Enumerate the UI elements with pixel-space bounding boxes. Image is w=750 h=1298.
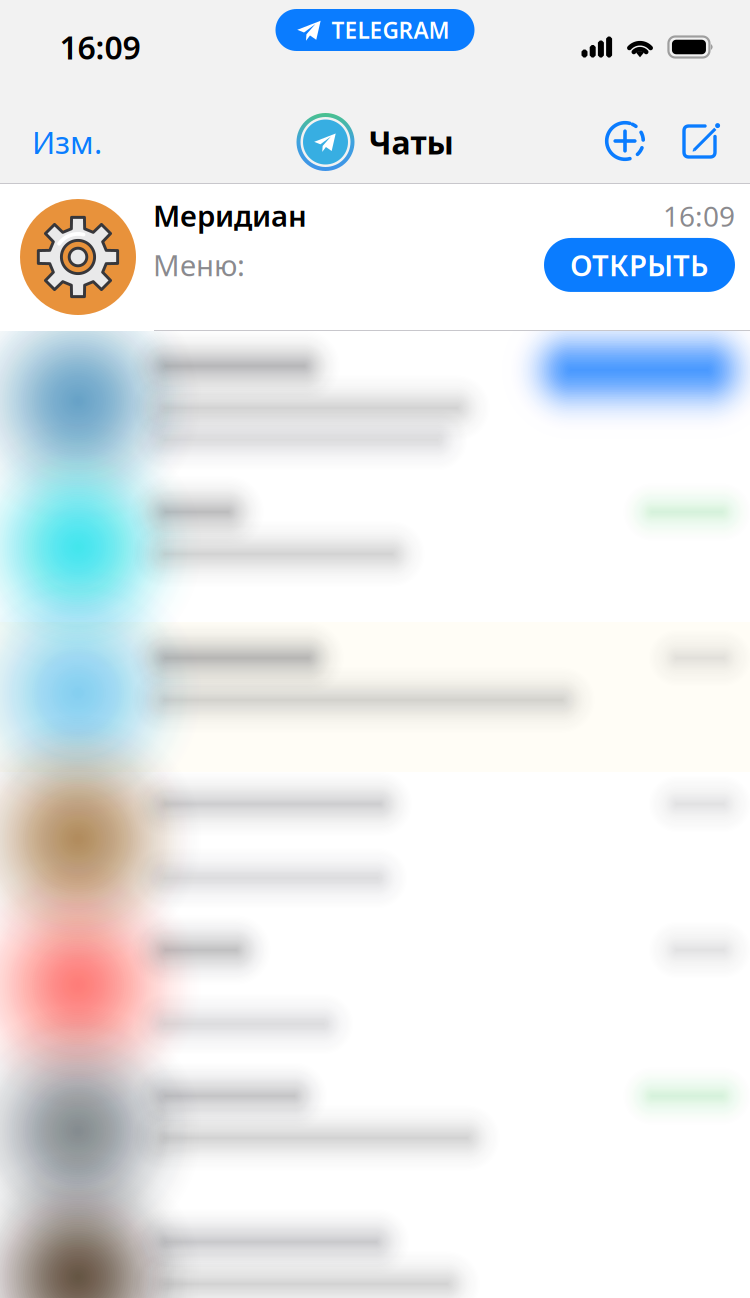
- staticText: Изм.: [32, 122, 102, 162]
- staticText: Меридиан: [153, 196, 307, 235]
- staticText: ОТКРЫТЬ: [570, 245, 709, 284]
- staticText: 16:09: [59, 26, 140, 68]
- button[interactable]: New Message: [678, 120, 722, 164]
- button[interactable]: Меридиан: [0, 184, 750, 331]
- button[interactable]: Изм.: [16, 108, 118, 176]
- staticText: 16:09: [663, 197, 735, 235]
- staticText: Меню:: [153, 245, 245, 284]
- button[interactable]: Add Story: [604, 120, 648, 164]
- staticText: Чаты: [368, 121, 453, 163]
- staticText: TELEGRAM: [331, 15, 449, 45]
